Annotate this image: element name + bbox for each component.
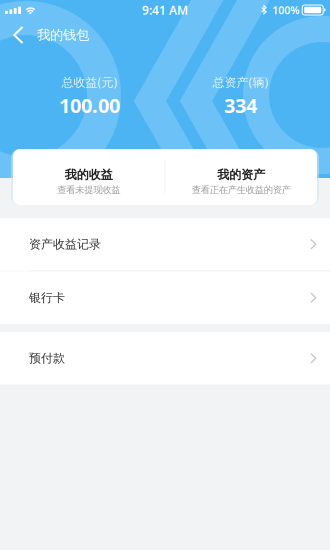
staticText: 我的收益 xyxy=(65,167,113,182)
button[interactable]: Back xyxy=(0,20,37,50)
button[interactable]: 我的收益 xyxy=(13,151,164,203)
staticText: 总收益(元) xyxy=(61,74,117,90)
staticText: 我的资产 xyxy=(217,167,265,182)
button[interactable]: 我的资产 xyxy=(165,151,317,203)
staticText: 总资产(辆) xyxy=(212,74,268,90)
staticText: 查看正在产生收益的资产 xyxy=(192,184,291,196)
staticText: 查看未提现收益 xyxy=(57,184,120,196)
button[interactable]: 预付款 xyxy=(0,332,330,384)
staticText: 100.00 xyxy=(59,92,120,118)
button[interactable]: 银行卡 xyxy=(0,271,330,324)
staticText: 100% xyxy=(272,3,299,17)
staticText: 我的钱包 xyxy=(37,27,89,43)
staticText: 334 xyxy=(224,92,257,118)
staticText: 9:41 AM xyxy=(142,2,188,18)
staticText: 资产收益记录 xyxy=(29,237,101,252)
staticText: 预付款 xyxy=(29,351,65,366)
staticText: 银行卡 xyxy=(29,290,65,305)
button[interactable]: 资产收益记录 xyxy=(0,218,330,270)
